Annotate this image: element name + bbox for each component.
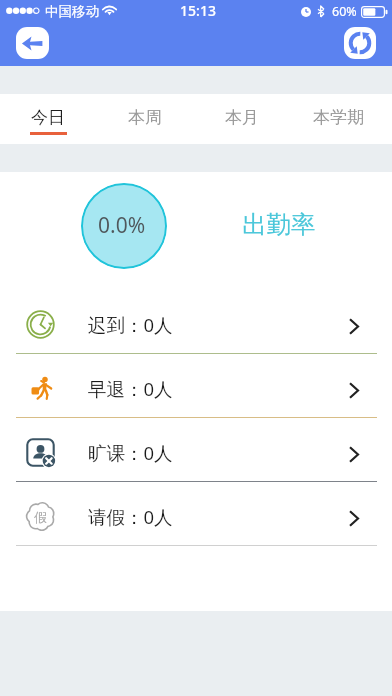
- button[interactable]: Back: [16, 27, 49, 59]
- button[interactable]: 早退：0人: [0, 354, 392, 418]
- staticText: 今日: [31, 107, 65, 128]
- staticText: 60%: [332, 3, 357, 20]
- button[interactable]: 本周: [96, 94, 193, 144]
- staticText: 假: [34, 509, 47, 525]
- button[interactable]: 迟到：0人: [0, 290, 392, 354]
- button[interactable]: 本学期: [290, 94, 387, 144]
- staticText: 0.0%: [98, 211, 146, 240]
- staticText: 请假：0人: [88, 504, 173, 529]
- button[interactable]: Refresh: [344, 27, 376, 59]
- staticText: 早退：0人: [88, 376, 173, 401]
- staticText: 迟到：0人: [88, 312, 173, 337]
- button[interactable]: 本月: [193, 94, 290, 144]
- staticText: 旷课：0人: [88, 440, 173, 465]
- staticText: 本学期: [313, 107, 364, 128]
- staticText: 中国移动: [45, 3, 99, 20]
- button[interactable]: 假: [0, 482, 392, 546]
- staticText: 本月: [225, 107, 259, 128]
- button[interactable]: 今日: [0, 94, 96, 144]
- staticText: 15:13: [2, 1, 392, 20]
- staticText: 本周: [128, 107, 162, 128]
- staticText: 出勤率: [242, 209, 316, 240]
- button[interactable]: 旷课：0人: [0, 418, 392, 482]
